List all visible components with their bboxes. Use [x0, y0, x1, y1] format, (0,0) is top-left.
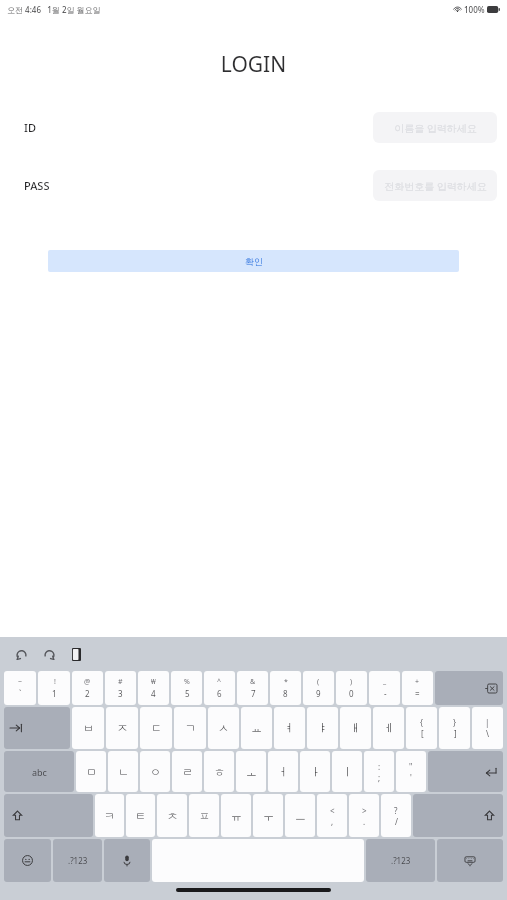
staticText: | — [485, 717, 490, 728]
staticText: ㅅ — [218, 721, 229, 735]
staticText: 0 — [349, 688, 354, 699]
button[interactable]: ㅂ — [72, 707, 104, 749]
button[interactable]: .?123 — [366, 839, 435, 882]
button[interactable]: ㅗ — [236, 751, 266, 792]
staticText: ㅐ — [350, 721, 361, 735]
staticText: ㄷ — [151, 721, 162, 735]
button[interactable]: 이름을 입력하세요 — [373, 112, 497, 143]
button[interactable]: < — [317, 794, 347, 837]
button[interactable]: { — [406, 707, 437, 749]
staticText: > — [362, 805, 367, 816]
button[interactable]: & — [237, 671, 268, 705]
button[interactable] — [4, 839, 51, 882]
staticText: = — [415, 688, 420, 699]
button[interactable] — [428, 751, 503, 792]
staticText: < — [330, 805, 335, 816]
other: Emoji — [3, 838, 52, 883]
staticText: ㅈ — [117, 721, 128, 735]
button[interactable]: ㅌ — [126, 794, 155, 837]
button[interactable]: _ — [369, 671, 400, 705]
button[interactable]: } — [439, 707, 470, 749]
button[interactable]: * — [270, 671, 301, 705]
button[interactable]: ㅇ — [140, 751, 170, 792]
button[interactable] — [413, 794, 503, 837]
staticText: ㅏ — [310, 765, 321, 779]
other: Hide keyboard — [436, 838, 504, 883]
staticText: & — [250, 677, 256, 687]
button[interactable]: Undo — [10, 643, 32, 665]
button[interactable]: ㅕ — [274, 707, 305, 749]
button[interactable]: ₩ — [138, 671, 169, 705]
button[interactable]: ㅎ — [204, 751, 234, 792]
button[interactable]: ㅜ — [253, 794, 283, 837]
button[interactable]: ) — [336, 671, 367, 705]
staticText: } — [453, 717, 457, 728]
button[interactable]: ? — [381, 794, 411, 837]
staticText: * — [284, 677, 288, 687]
button[interactable]: Redo — [38, 643, 60, 665]
button[interactable]: .?123 — [53, 839, 102, 882]
button[interactable]: | — [472, 707, 503, 749]
button[interactable]: : — [364, 751, 394, 792]
staticText: ~ — [18, 677, 23, 687]
button[interactable]: ! — [38, 671, 70, 705]
button[interactable]: ㅍ — [189, 794, 219, 837]
button[interactable]: ㅓ — [268, 751, 298, 792]
other: Space — [151, 838, 365, 883]
button[interactable]: Clipboard — [65, 643, 87, 665]
button[interactable]: 확인 — [48, 250, 459, 272]
staticText: ? — [394, 805, 398, 816]
button[interactable]: ㅁ — [76, 751, 106, 792]
staticText: 1 — [52, 688, 57, 699]
button[interactable]: ㄷ — [140, 707, 172, 749]
button[interactable] — [104, 839, 150, 882]
staticText: 확인 — [245, 256, 263, 267]
button[interactable]: ㅏ — [300, 751, 330, 792]
button[interactable]: ㄴ — [108, 751, 138, 792]
button[interactable]: ㅅ — [208, 707, 239, 749]
button[interactable]: ㅔ — [373, 707, 404, 749]
button[interactable]: + — [402, 671, 433, 705]
button[interactable]: ㅋ — [95, 794, 124, 837]
button[interactable]: > — [349, 794, 379, 837]
staticText: . — [363, 816, 366, 827]
button[interactable]: ㅈ — [106, 707, 138, 749]
button[interactable]: @ — [72, 671, 103, 705]
staticText: 이름을 입력하세요 — [394, 121, 477, 135]
button[interactable]: ㅡ — [285, 794, 315, 837]
button[interactable] — [4, 707, 70, 749]
button[interactable] — [435, 671, 503, 705]
staticText: ㅜ — [263, 809, 274, 823]
staticText: - — [384, 688, 387, 699]
button[interactable]: ( — [303, 671, 334, 705]
other: Enter — [427, 750, 504, 793]
button[interactable]: ^ — [204, 671, 235, 705]
button[interactable] — [437, 839, 503, 882]
button[interactable]: # — [105, 671, 136, 705]
staticText: % — [184, 677, 190, 687]
staticText: ㅍ — [199, 809, 210, 823]
button[interactable]: abc — [4, 751, 74, 792]
button[interactable]: % — [171, 671, 202, 705]
button[interactable]: ㅣ — [332, 751, 362, 792]
button[interactable]: ㅑ — [307, 707, 338, 749]
button[interactable]: ㄹ — [172, 751, 202, 792]
staticText: ㅡ — [295, 809, 306, 823]
staticText: abc — [32, 766, 47, 778]
other: Tab — [3, 706, 71, 750]
button[interactable]: ㅠ — [221, 794, 251, 837]
staticText: ㅎ — [214, 765, 225, 779]
button[interactable]: ~ — [4, 671, 36, 705]
button[interactable]: ㅐ — [340, 707, 371, 749]
button[interactable] — [4, 794, 93, 837]
button[interactable]: ㅊ — [157, 794, 187, 837]
button[interactable]: 전화번호를 입력하세요 — [373, 170, 497, 201]
button[interactable]: " — [396, 751, 426, 792]
button[interactable]: ㄱ — [174, 707, 206, 749]
staticText: 2 — [85, 688, 90, 699]
staticText: 7 — [251, 688, 256, 699]
button[interactable]: ㅛ — [241, 707, 272, 749]
staticText: ㅣ — [342, 765, 353, 779]
staticText: : — [378, 761, 381, 772]
